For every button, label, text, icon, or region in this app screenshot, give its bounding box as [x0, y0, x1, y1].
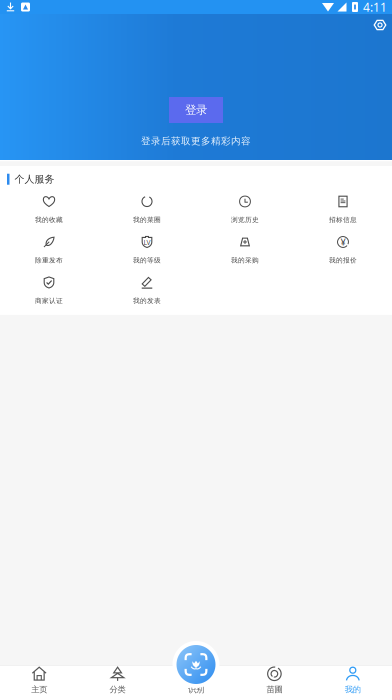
- button[interactable]: 除重发布: [0, 230, 98, 270]
- button[interactable]: 分类: [78, 665, 157, 700]
- button[interactable]: Settings: [369, 14, 391, 36]
- staticText: 登录后获取更多精彩内容: [141, 135, 251, 147]
- staticText: 苗圃: [266, 684, 282, 695]
- staticText: 除重发布: [35, 256, 63, 264]
- button[interactable]: 浏览历史: [196, 189, 294, 230]
- staticText: 分类: [110, 684, 126, 695]
- staticText: 我的等级: [133, 256, 161, 264]
- button[interactable]: 主页: [0, 665, 78, 700]
- staticText: 我的菜圈: [133, 215, 161, 224]
- staticText: 识别: [188, 684, 204, 695]
- staticText: 浏览历史: [231, 215, 259, 224]
- button[interactable]: 我的采购: [196, 230, 294, 270]
- staticText: 我的采购: [231, 256, 259, 264]
- staticText: LV: [143, 238, 150, 247]
- staticText: 登录: [185, 103, 207, 117]
- button[interactable]: 我的: [314, 665, 392, 700]
- button[interactable]: 识别: [172, 641, 219, 688]
- button[interactable]: 识别: [157, 665, 235, 700]
- staticText: 4:11: [363, 0, 387, 15]
- button[interactable]: LV: [98, 230, 196, 270]
- staticText: 我的: [345, 684, 361, 695]
- button[interactable]: ¥: [294, 230, 392, 270]
- staticText: 我的报价: [329, 256, 357, 264]
- button[interactable]: 我的菜圈: [98, 189, 196, 230]
- staticText: 主页: [31, 684, 47, 695]
- button[interactable]: 苗圃: [235, 665, 314, 700]
- staticText: 商家认证: [35, 296, 63, 305]
- staticText: ¥: [340, 236, 345, 248]
- button[interactable]: 招标信息: [294, 189, 392, 230]
- staticText: 个人服务: [14, 173, 54, 185]
- staticText: 我的发表: [133, 296, 161, 305]
- button[interactable]: 我的收藏: [0, 189, 98, 230]
- staticText: 我的收藏: [35, 215, 63, 224]
- button[interactable]: 商家认证: [0, 270, 98, 311]
- button[interactable]: 登录: [169, 97, 223, 123]
- button[interactable]: 我的发表: [98, 270, 196, 311]
- staticText: 招标信息: [329, 215, 357, 224]
